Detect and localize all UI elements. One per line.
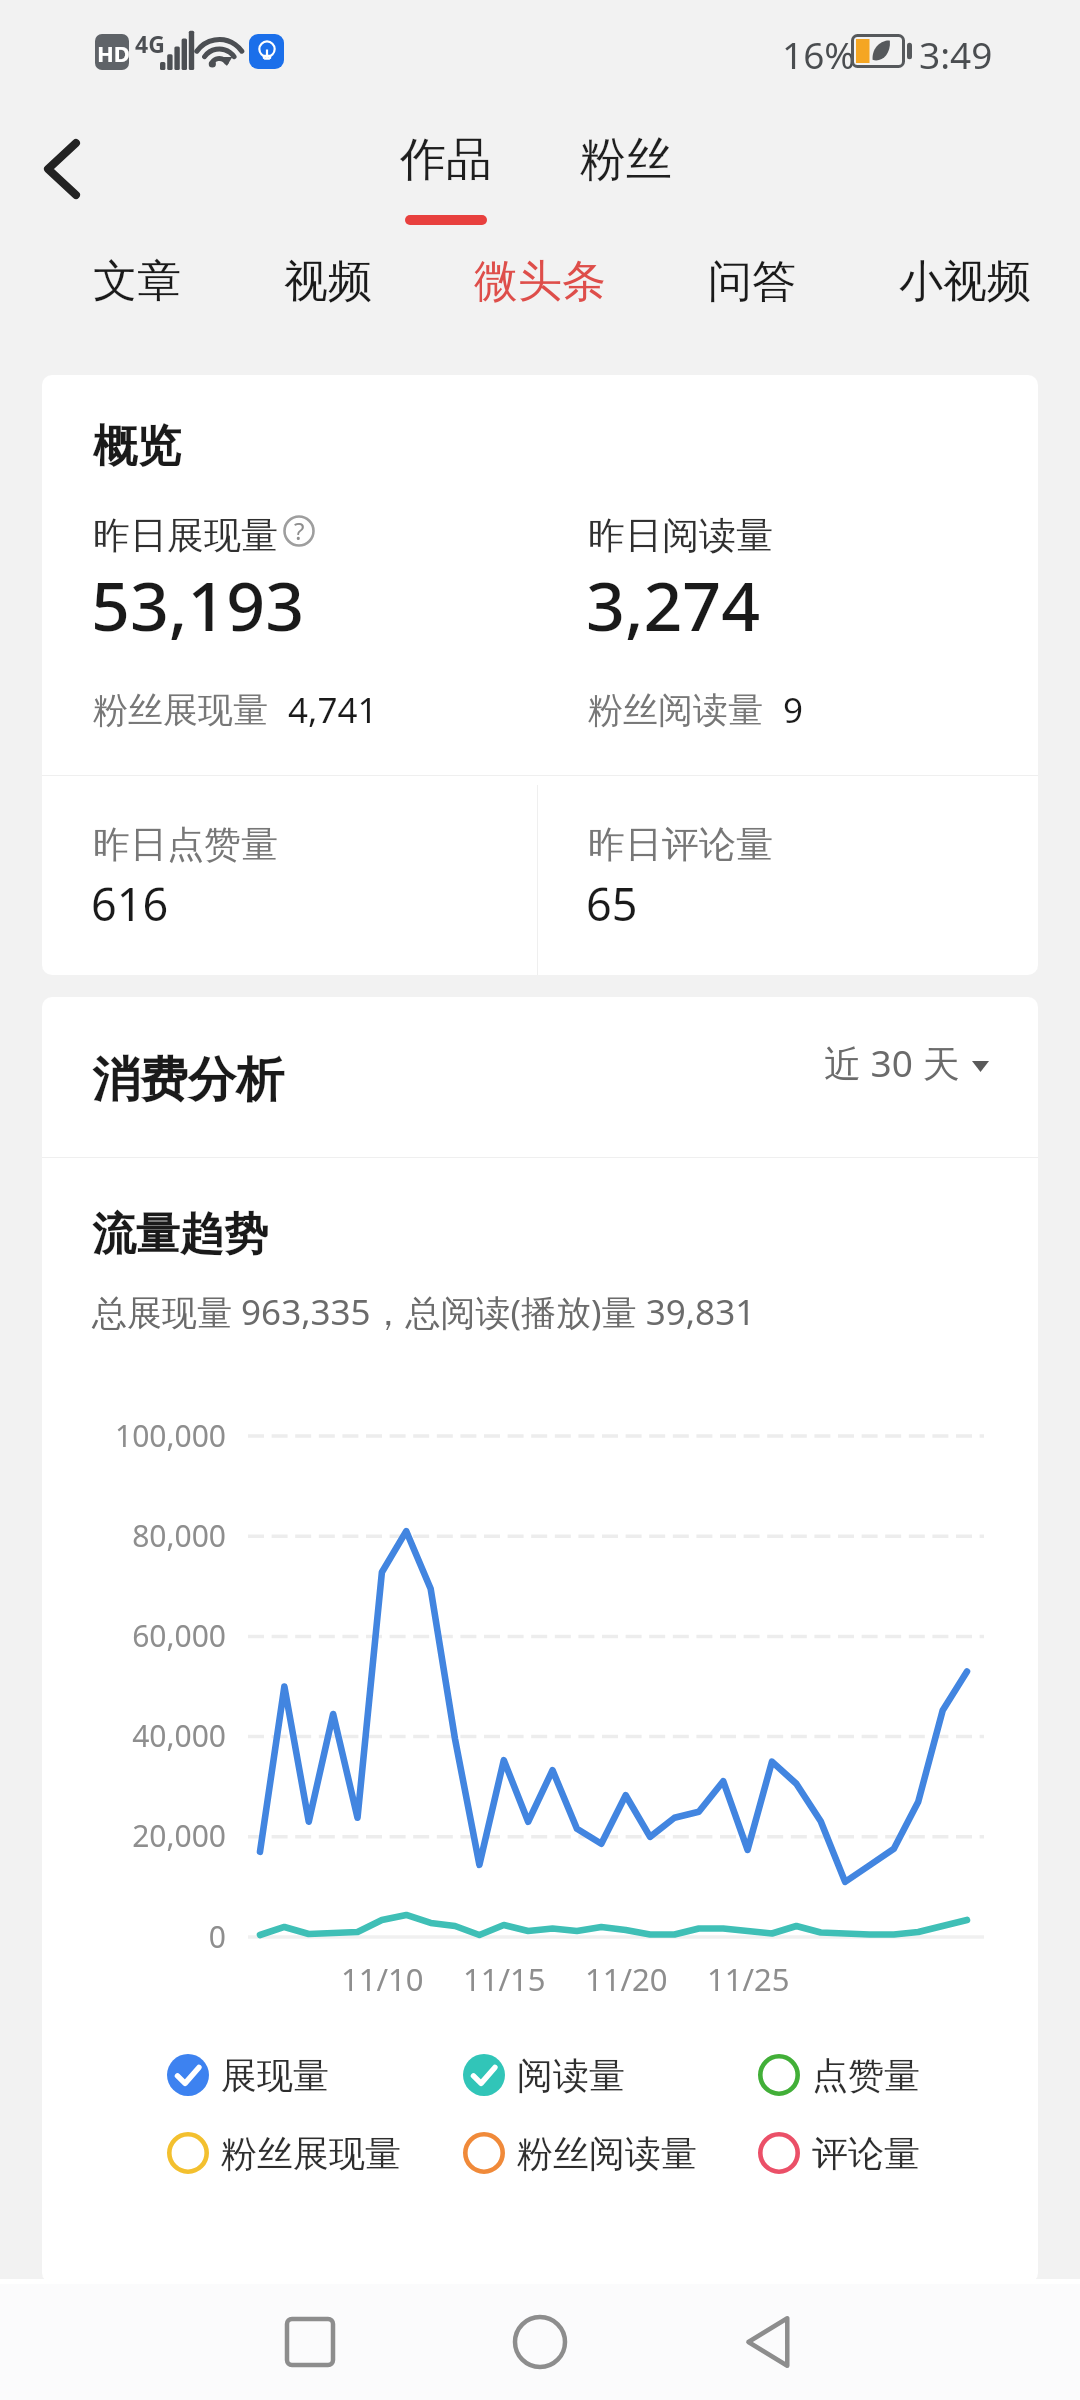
staticText: 流量趋势 bbox=[92, 1207, 268, 1262]
staticText: 视频 bbox=[284, 254, 372, 309]
staticText: 概览 bbox=[93, 419, 181, 474]
staticText: 总展现量 963,335，总阅读(播放)量 39,831 bbox=[92, 1288, 756, 1336]
button[interactable]: 作品 bbox=[368, 131, 524, 251]
staticText: 11/25 bbox=[707, 1958, 790, 2000]
staticText: 近 30 天 bbox=[824, 1037, 960, 1088]
staticText: 粉丝展现量 bbox=[93, 688, 268, 732]
staticText: 昨日展现量 bbox=[93, 512, 278, 559]
button[interactable]: 点赞量 bbox=[758, 2044, 920, 2106]
button[interactable]: Recents bbox=[248, 2284, 368, 2400]
staticText: 昨日评论量 bbox=[588, 821, 773, 868]
button[interactable]: 文章 bbox=[27, 235, 247, 327]
staticText: 4G bbox=[135, 28, 165, 59]
button[interactable]: 微头条 bbox=[430, 235, 650, 327]
staticText: 评论量 bbox=[812, 2131, 920, 2176]
staticText: ? bbox=[294, 514, 305, 547]
staticText: 9 bbox=[783, 686, 804, 734]
staticText: 40,000 bbox=[132, 1715, 226, 1756]
staticText: 53,193 bbox=[91, 558, 305, 651]
staticText: 20,000 bbox=[132, 1815, 226, 1856]
staticText: 问答 bbox=[708, 254, 796, 309]
staticText: HD bbox=[97, 38, 129, 68]
button[interactable]: 小视频 bbox=[855, 235, 1075, 327]
button[interactable]: Back bbox=[18, 124, 110, 220]
staticText: 4,741 bbox=[288, 686, 378, 734]
staticText: 100,000 bbox=[115, 1415, 226, 1456]
staticText: 阅读量 bbox=[517, 2053, 625, 2098]
staticText: 80,000 bbox=[132, 1515, 226, 1556]
button[interactable]: 粉丝阅读量 bbox=[463, 2122, 697, 2184]
staticText: 0 bbox=[208, 1916, 226, 1957]
staticText: 粉丝阅读量 bbox=[517, 2131, 697, 2176]
staticText: 点赞量 bbox=[812, 2053, 920, 2098]
button[interactable]: 问答 bbox=[642, 235, 862, 327]
staticText: 展现量 bbox=[221, 2053, 329, 2098]
staticText: 粉丝 bbox=[580, 131, 672, 189]
staticText: 微头条 bbox=[474, 254, 606, 309]
staticText: 3,274 bbox=[586, 558, 761, 651]
button[interactable]: Back bbox=[710, 2284, 830, 2400]
staticText: 65 bbox=[586, 873, 638, 934]
staticText: 文章 bbox=[93, 254, 181, 309]
button[interactable]: 展现量 bbox=[167, 2044, 329, 2106]
button[interactable]: 粉丝展现量 bbox=[167, 2122, 401, 2184]
button[interactable]: 粉丝 bbox=[548, 131, 704, 251]
button[interactable]: 视频 bbox=[218, 235, 438, 327]
staticText: 616 bbox=[91, 873, 169, 934]
staticText: 粉丝展现量 bbox=[221, 2131, 401, 2176]
button[interactable]: Home bbox=[480, 2284, 600, 2400]
staticText: 16% bbox=[782, 29, 856, 79]
staticText: 昨日点赞量 bbox=[93, 821, 278, 868]
staticText: 11/10 bbox=[341, 1958, 424, 2000]
button[interactable]: 评论量 bbox=[758, 2122, 920, 2184]
staticText: 消费分析 bbox=[92, 1050, 284, 1110]
staticText: 作品 bbox=[400, 131, 492, 189]
button[interactable]: 阅读量 bbox=[463, 2044, 625, 2106]
staticText: 昨日阅读量 bbox=[588, 512, 773, 559]
staticText: 11/20 bbox=[585, 1958, 668, 2000]
staticText: 11/15 bbox=[463, 1958, 546, 2000]
button[interactable]: 近 30 天 bbox=[818, 1027, 995, 1098]
staticText: 小视频 bbox=[899, 254, 1031, 309]
staticText: 粉丝阅读量 bbox=[588, 688, 763, 732]
staticText: 3:49 bbox=[919, 29, 993, 79]
staticText: 60,000 bbox=[132, 1615, 226, 1656]
